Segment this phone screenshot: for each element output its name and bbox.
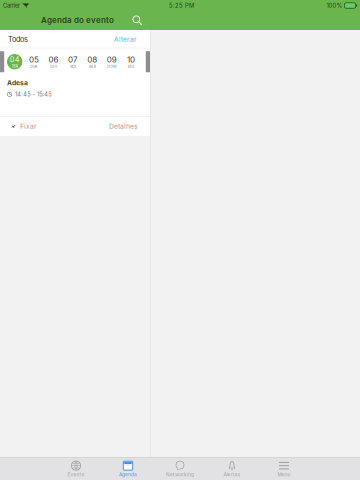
staticText: 04 <box>10 55 20 64</box>
staticText: DOM <box>107 64 116 69</box>
staticText: 07 <box>68 55 78 64</box>
staticText: 10 <box>127 55 135 64</box>
staticText: QUI <box>50 64 57 69</box>
staticText: Menu <box>277 472 290 477</box>
button[interactable]: Alterar <box>106 35 138 43</box>
staticText: SEX <box>70 64 76 69</box>
staticText: 100% <box>326 2 342 9</box>
button[interactable]: 07 <box>63 50 83 73</box>
staticText: 08 <box>87 55 97 64</box>
button[interactable]: 06 <box>44 50 63 73</box>
button[interactable]: Networking <box>154 458 206 480</box>
button[interactable]: Search <box>126 11 148 29</box>
staticText: Agenda do evento <box>41 15 114 25</box>
staticText: QUA <box>30 64 38 69</box>
button[interactable]: Menu <box>258 458 310 480</box>
button[interactable]: Alertas <box>206 458 258 480</box>
staticText: 09 <box>107 55 117 64</box>
button[interactable]: 08 <box>83 50 102 73</box>
staticText: 06 <box>48 55 58 64</box>
button[interactable]: 10 <box>121 50 141 73</box>
button[interactable]: 05 <box>24 50 44 73</box>
staticText: TER <box>12 64 18 68</box>
button[interactable]: 09 <box>102 50 121 73</box>
staticText: 14:45 - 15:45 <box>15 91 51 98</box>
staticText: SÁB <box>89 64 96 69</box>
staticText: 5:25 PM <box>169 2 194 9</box>
staticText: Networking <box>166 472 194 477</box>
button[interactable]: Evento <box>50 458 102 480</box>
staticText: Alertas <box>223 472 240 477</box>
staticText: Todos <box>8 35 28 44</box>
button[interactable]: Agenda <box>102 458 154 480</box>
staticText: Alterar <box>114 35 137 43</box>
staticText: Detalhes <box>109 122 138 130</box>
button[interactable]: 04 <box>5 50 24 73</box>
staticText: Agenda <box>119 472 137 477</box>
button[interactable]: Adesa <box>0 75 150 116</box>
staticText: 05 <box>29 55 39 64</box>
staticText: Carrier <box>3 2 20 9</box>
staticText: Fixar <box>20 122 37 130</box>
staticText: Evento <box>67 472 84 477</box>
staticText: SEG <box>128 64 135 69</box>
button[interactable]: Detalhes <box>75 117 150 136</box>
staticText: Adesa <box>7 79 28 87</box>
button[interactable]: Fixar <box>0 117 75 136</box>
